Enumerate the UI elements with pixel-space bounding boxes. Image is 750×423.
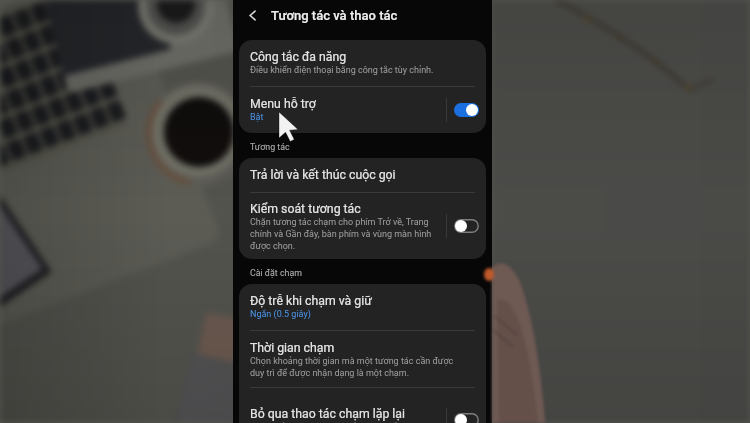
staticText: Ngắn (0.5 giây) [250,309,311,320]
staticText: Thời gian chạm [250,341,335,355]
staticText: Menu hỗ trợ [250,97,316,111]
button[interactable]: Thời gian chạm [239,331,486,387]
button[interactable]: Độ trễ khi chạm và giữ [239,284,486,330]
staticText: Trả lời và kết thúc cuộc gọi [250,168,396,182]
staticText: Chọn khoảng thời gian mà một tương tác c… [250,356,456,378]
staticText: Độ trễ khi chạm và giữ [250,294,372,308]
staticText: Bật [250,112,264,123]
button[interactable]: Toggle [454,413,479,423]
button[interactable]: Toggle [454,103,479,117]
button[interactable]: Trả lời và kết thúc cuộc gọi [239,158,486,192]
staticText: Tương tác và thao tác [271,8,398,23]
staticText: Kiểm soát tương tác [250,202,361,216]
button[interactable]: Kiểm soát tương tác [239,193,486,259]
staticText: Công tắc đa năng [250,50,347,64]
staticText: Bỏ qua thao tác chạm lặp lại [250,407,406,421]
staticText: Cài đặt chạm [250,268,302,278]
button[interactable]: Bỏ qua thao tác chạm lặp lại [239,388,486,423]
staticText: Đặt khoảng thời gian đã bỏ qua các lần c… [250,422,431,423]
button[interactable]: Toggle [454,219,479,233]
staticText: Tương tác [250,142,290,152]
staticText: Chặn tương tác chạm cho phím Trở về, Tra… [250,217,440,251]
staticText: Điều khiển điện thoại bằng công tắc tùy … [250,65,434,76]
button[interactable]: Back [233,0,271,30]
button[interactable]: Menu hỗ trợ [239,87,486,133]
button[interactable]: Công tắc đa năng [239,40,486,86]
